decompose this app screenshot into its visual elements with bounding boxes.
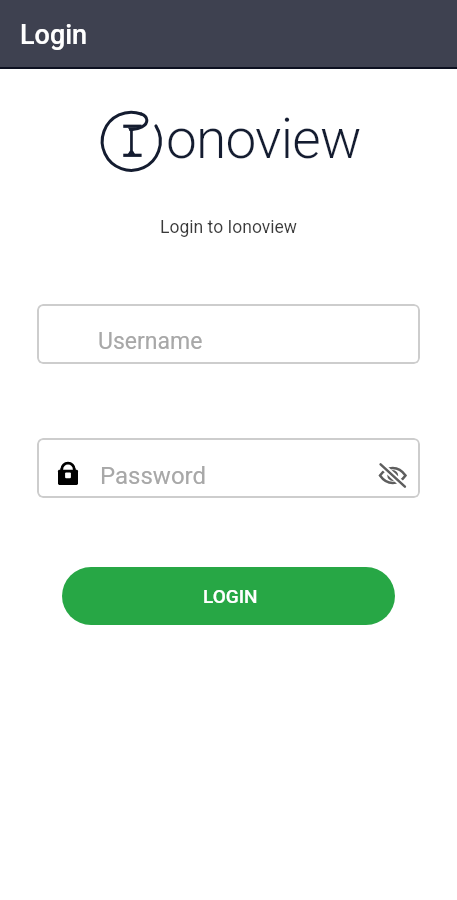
staticText: Username (98, 328, 203, 355)
staticText: Login (20, 19, 88, 51)
button[interactable]: Login (0, 0, 457, 67)
staticText: Password (100, 462, 207, 490)
staticText: LOGIN (203, 585, 258, 607)
button[interactable]: Username (37, 304, 420, 364)
button[interactable]: Password (37, 438, 420, 498)
staticText: onoview (166, 107, 361, 171)
staticText: Login to Ionoview (0, 217, 457, 238)
button[interactable]: LOGIN (62, 567, 395, 625)
button[interactable]: Show password (355, 438, 401, 498)
